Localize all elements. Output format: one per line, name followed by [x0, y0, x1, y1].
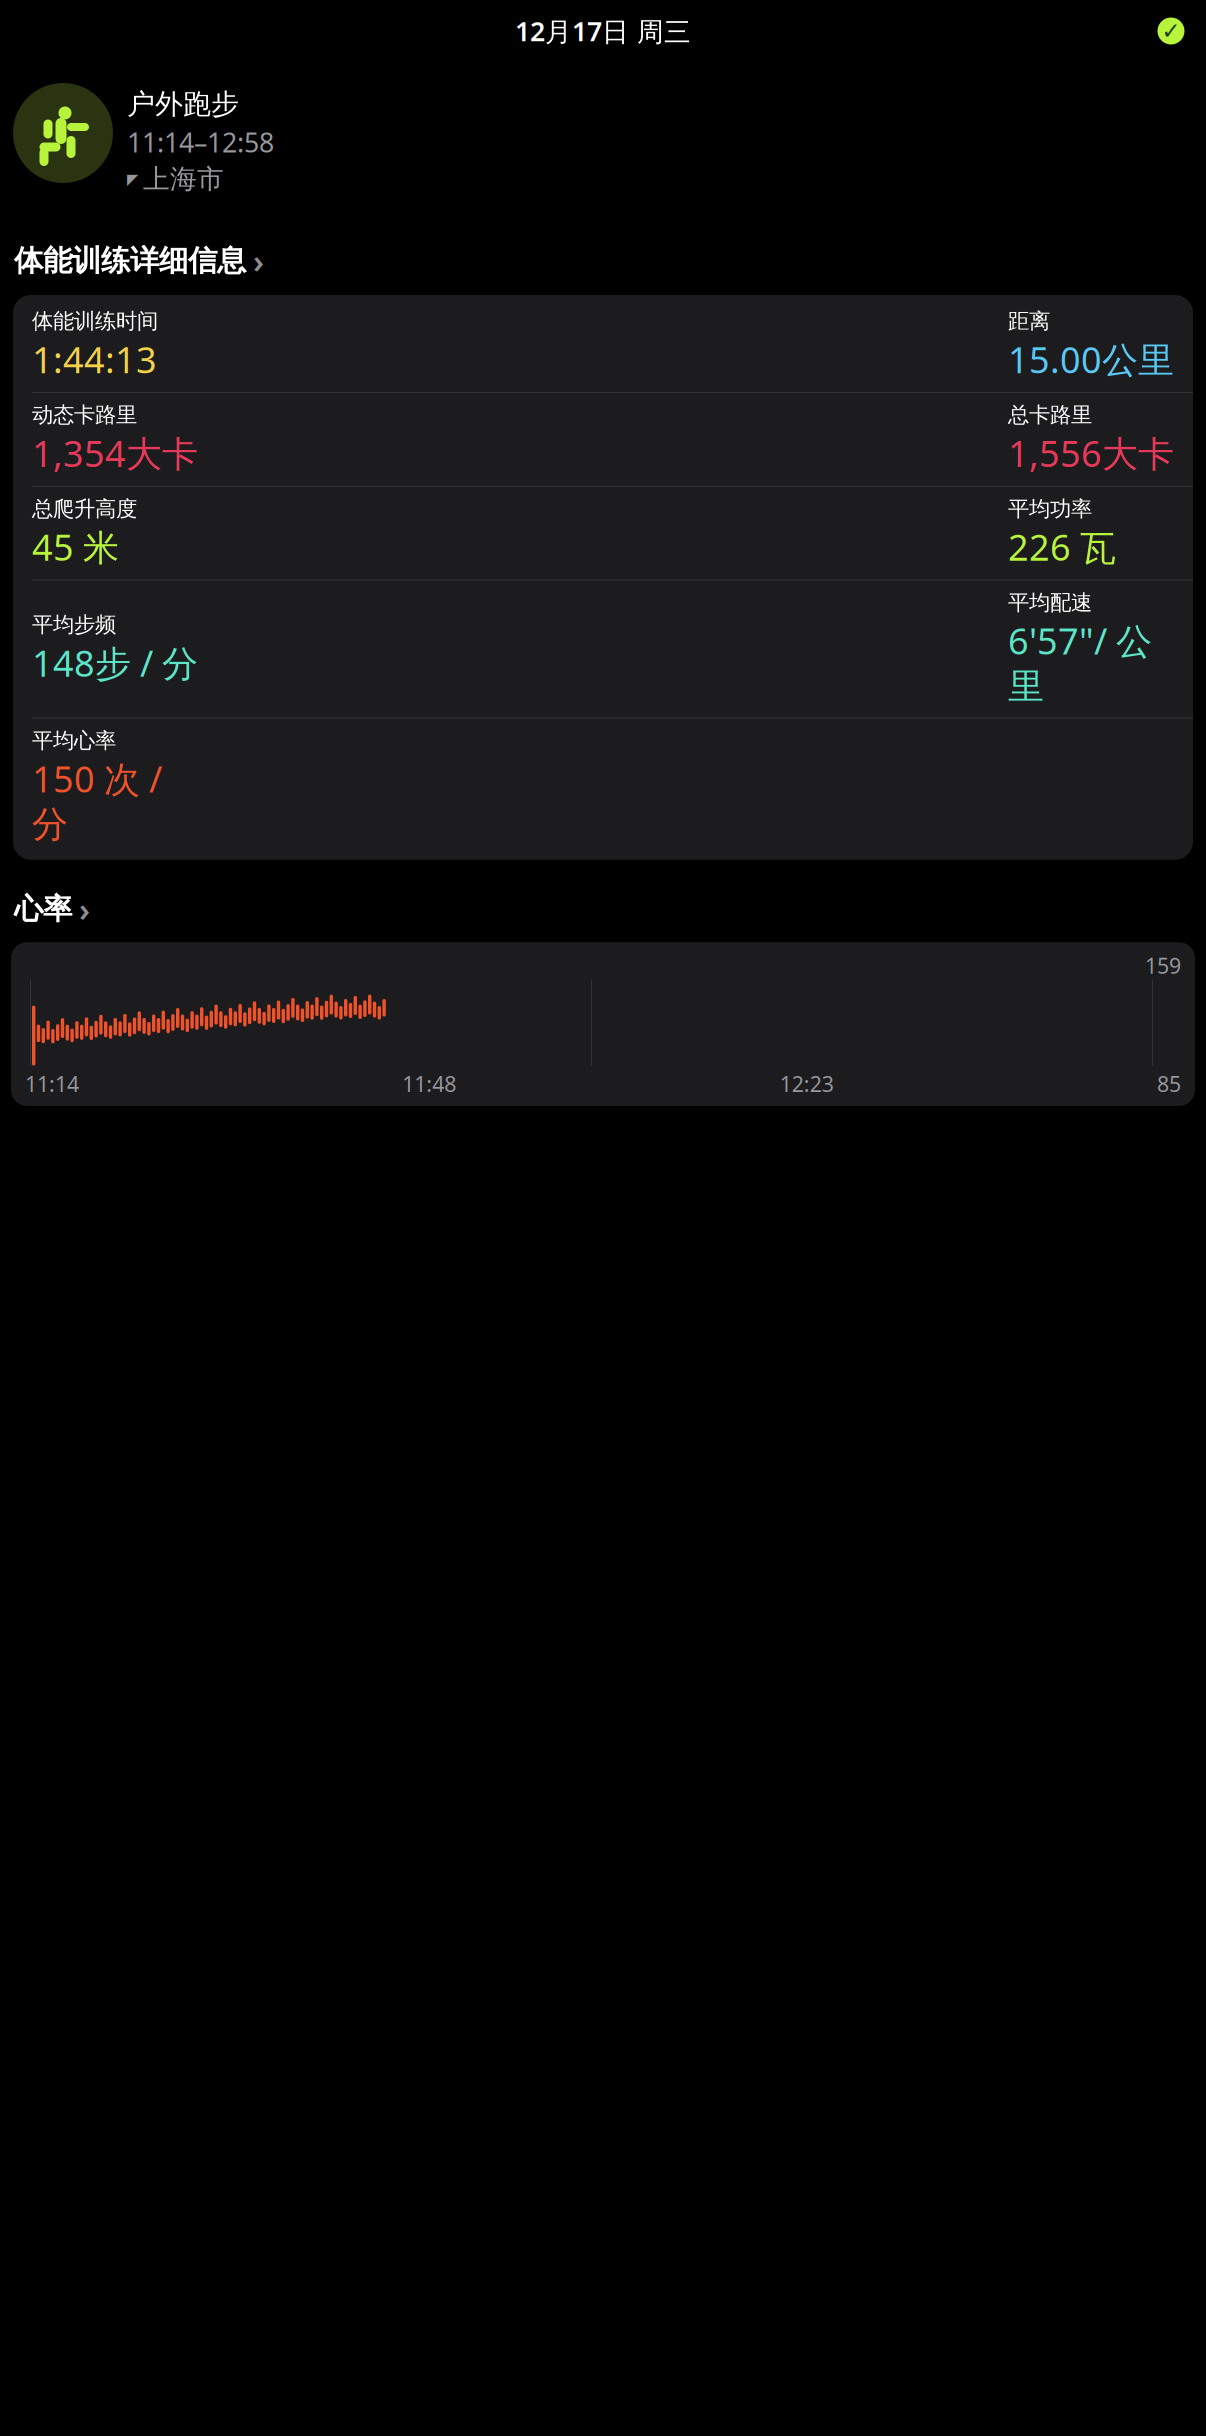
- staticText: 6'57"/ 公里: [1008, 617, 1152, 709]
- staticText: 平均功率: [1008, 496, 1092, 522]
- staticText: 150 次 / 分: [32, 755, 162, 847]
- staticText: 平均配速: [1008, 589, 1092, 616]
- staticText: 11:14–12:58: [127, 124, 274, 160]
- staticText: 226 瓦: [1008, 523, 1116, 571]
- staticText: 总卡路里: [1008, 402, 1092, 428]
- staticText: ◤: [127, 171, 138, 187]
- button[interactable]: 心率: [14, 888, 1206, 930]
- staticText: 户外跑步: [127, 87, 239, 121]
- staticText: 平均心率: [32, 727, 116, 754]
- staticText: 148步 / 分: [32, 639, 198, 687]
- staticText: 159: [1145, 951, 1181, 979]
- button[interactable]: 体能训练详细信息: [14, 240, 1206, 282]
- staticText: ›: [79, 888, 90, 930]
- staticText: 体能训练详细信息: [14, 243, 246, 279]
- staticText: 11:14: [25, 1070, 79, 1098]
- staticText: 距离: [1008, 308, 1050, 334]
- staticText: 体能训练时间: [32, 308, 158, 334]
- staticText: 总爬升高度: [32, 496, 137, 522]
- staticText: 12月17日 周三: [515, 13, 691, 49]
- staticText: 15.00公里: [1008, 335, 1174, 383]
- staticText: ›: [253, 240, 264, 282]
- staticText: 动态卡路里: [32, 402, 137, 428]
- staticText: 1,354大卡: [32, 429, 198, 477]
- staticText: ✓: [1161, 18, 1180, 44]
- button[interactable]: 完成: [1149, 9, 1193, 53]
- staticText: 12:23: [780, 1070, 834, 1098]
- staticText: 1,556大卡: [1008, 429, 1174, 477]
- staticText: 85: [1157, 1070, 1181, 1098]
- staticText: 11:48: [402, 1070, 456, 1098]
- staticText: 平均步频: [32, 612, 116, 638]
- staticText: 上海市: [143, 163, 224, 196]
- staticText: 1:44:13: [32, 335, 157, 383]
- staticText: 45 米: [32, 523, 119, 571]
- staticText: 心率: [14, 891, 72, 927]
